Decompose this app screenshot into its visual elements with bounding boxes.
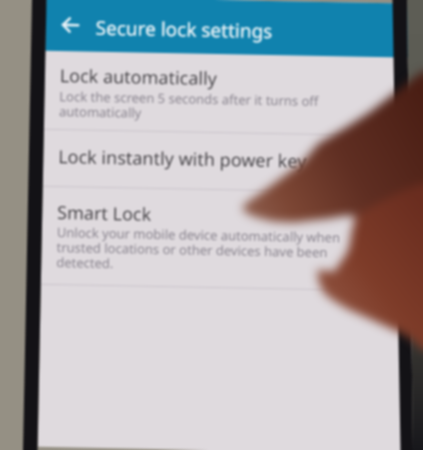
button[interactable] (43, 130, 416, 193)
button[interactable] (44, 51, 417, 136)
staticText: Lock instantly with power key (58, 144, 307, 174)
staticText: Smart Lock (57, 200, 151, 227)
staticText: Unlock your mobile device automatically … (56, 223, 341, 276)
staticText: Lock automatically (59, 63, 218, 91)
staticText: Lock the screen 5 seconds after it turns… (59, 87, 318, 125)
button[interactable] (41, 187, 415, 291)
staticText: Secure lock settings (95, 15, 273, 44)
button[interactable]: Navigate up (48, 10, 78, 39)
